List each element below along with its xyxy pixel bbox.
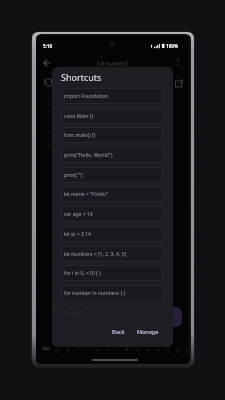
staticText: Shortcuts	[61, 71, 102, 83]
staticText: -	[117, 346, 119, 353]
button[interactable]: for number in numbers { }	[61, 285, 164, 301]
staticText: class Main {}	[64, 113, 94, 120]
button[interactable]: Copy	[39, 74, 55, 90]
staticText: Manage	[137, 328, 159, 336]
staticText: import Foundation	[64, 93, 109, 100]
button[interactable]: let pi = 3.14	[61, 226, 164, 242]
staticText: let name = "Hrishi"	[64, 191, 108, 198]
staticText: =	[96, 346, 99, 353]
staticText: let pi = 3.14	[64, 231, 91, 238]
button[interactable]: Back	[39, 55, 55, 71]
staticText: '	[87, 346, 89, 353]
staticText: if true { }	[64, 310, 85, 317]
staticText: print("")	[64, 172, 83, 179]
button[interactable]: for i in 0..<10 { }	[61, 265, 164, 281]
staticText: >	[157, 346, 160, 353]
staticText: )	[67, 346, 69, 353]
staticText: 3	[48, 107, 51, 113]
staticText: var age = 19	[64, 211, 93, 218]
staticText: +	[107, 346, 110, 353]
staticText: <	[146, 346, 149, 353]
staticText: /	[137, 346, 139, 353]
staticText: 6	[48, 129, 51, 135]
staticText: (	[57, 346, 59, 353]
staticText: {	[167, 346, 169, 353]
button[interactable]: let name = "Hrishi"	[61, 186, 164, 202]
staticText: 2	[48, 100, 51, 106]
button[interactable]: class Main {}	[61, 108, 164, 124]
staticText: 7	[48, 136, 51, 142]
staticText: for i in 0..<10 { }	[64, 270, 101, 277]
staticText: [	[186, 346, 188, 353]
staticText: 1	[48, 93, 51, 99]
staticText: 8	[48, 143, 51, 149]
staticText: TAB	[42, 346, 50, 352]
button[interactable]: let numbers = [1, 2, 3, 4, 5]	[61, 246, 164, 262]
staticText: 5	[48, 122, 51, 128]
button[interactable]: import Foundation	[61, 88, 164, 104]
staticText: }	[177, 346, 179, 353]
button[interactable]: Manage	[132, 325, 164, 339]
staticText: func main() {}	[64, 132, 96, 139]
staticText: Unsaved	[97, 58, 128, 68]
staticText: *	[126, 346, 129, 353]
button[interactable]: var age = 19	[61, 206, 164, 222]
button[interactable]: Back	[107, 325, 130, 339]
button[interactable]: print("Hello, World!")	[61, 147, 164, 163]
staticText: for number in numbers { }	[64, 290, 126, 297]
staticText: print("Hello, World!")	[64, 152, 113, 159]
button[interactable]: Run	[162, 307, 182, 327]
button[interactable]: More options	[170, 54, 186, 70]
button[interactable]: func main() {}	[61, 127, 164, 143]
staticText: 100%	[166, 43, 179, 49]
staticText: 4	[48, 114, 51, 120]
button[interactable]: print("")	[61, 167, 164, 183]
staticText: Back	[112, 328, 125, 336]
button[interactable]: Share	[170, 75, 186, 91]
staticText: "	[76, 346, 79, 353]
staticText: 5:16	[43, 43, 53, 49]
staticText: let numbers = [1, 2, 3, 4, 5]	[64, 251, 127, 258]
